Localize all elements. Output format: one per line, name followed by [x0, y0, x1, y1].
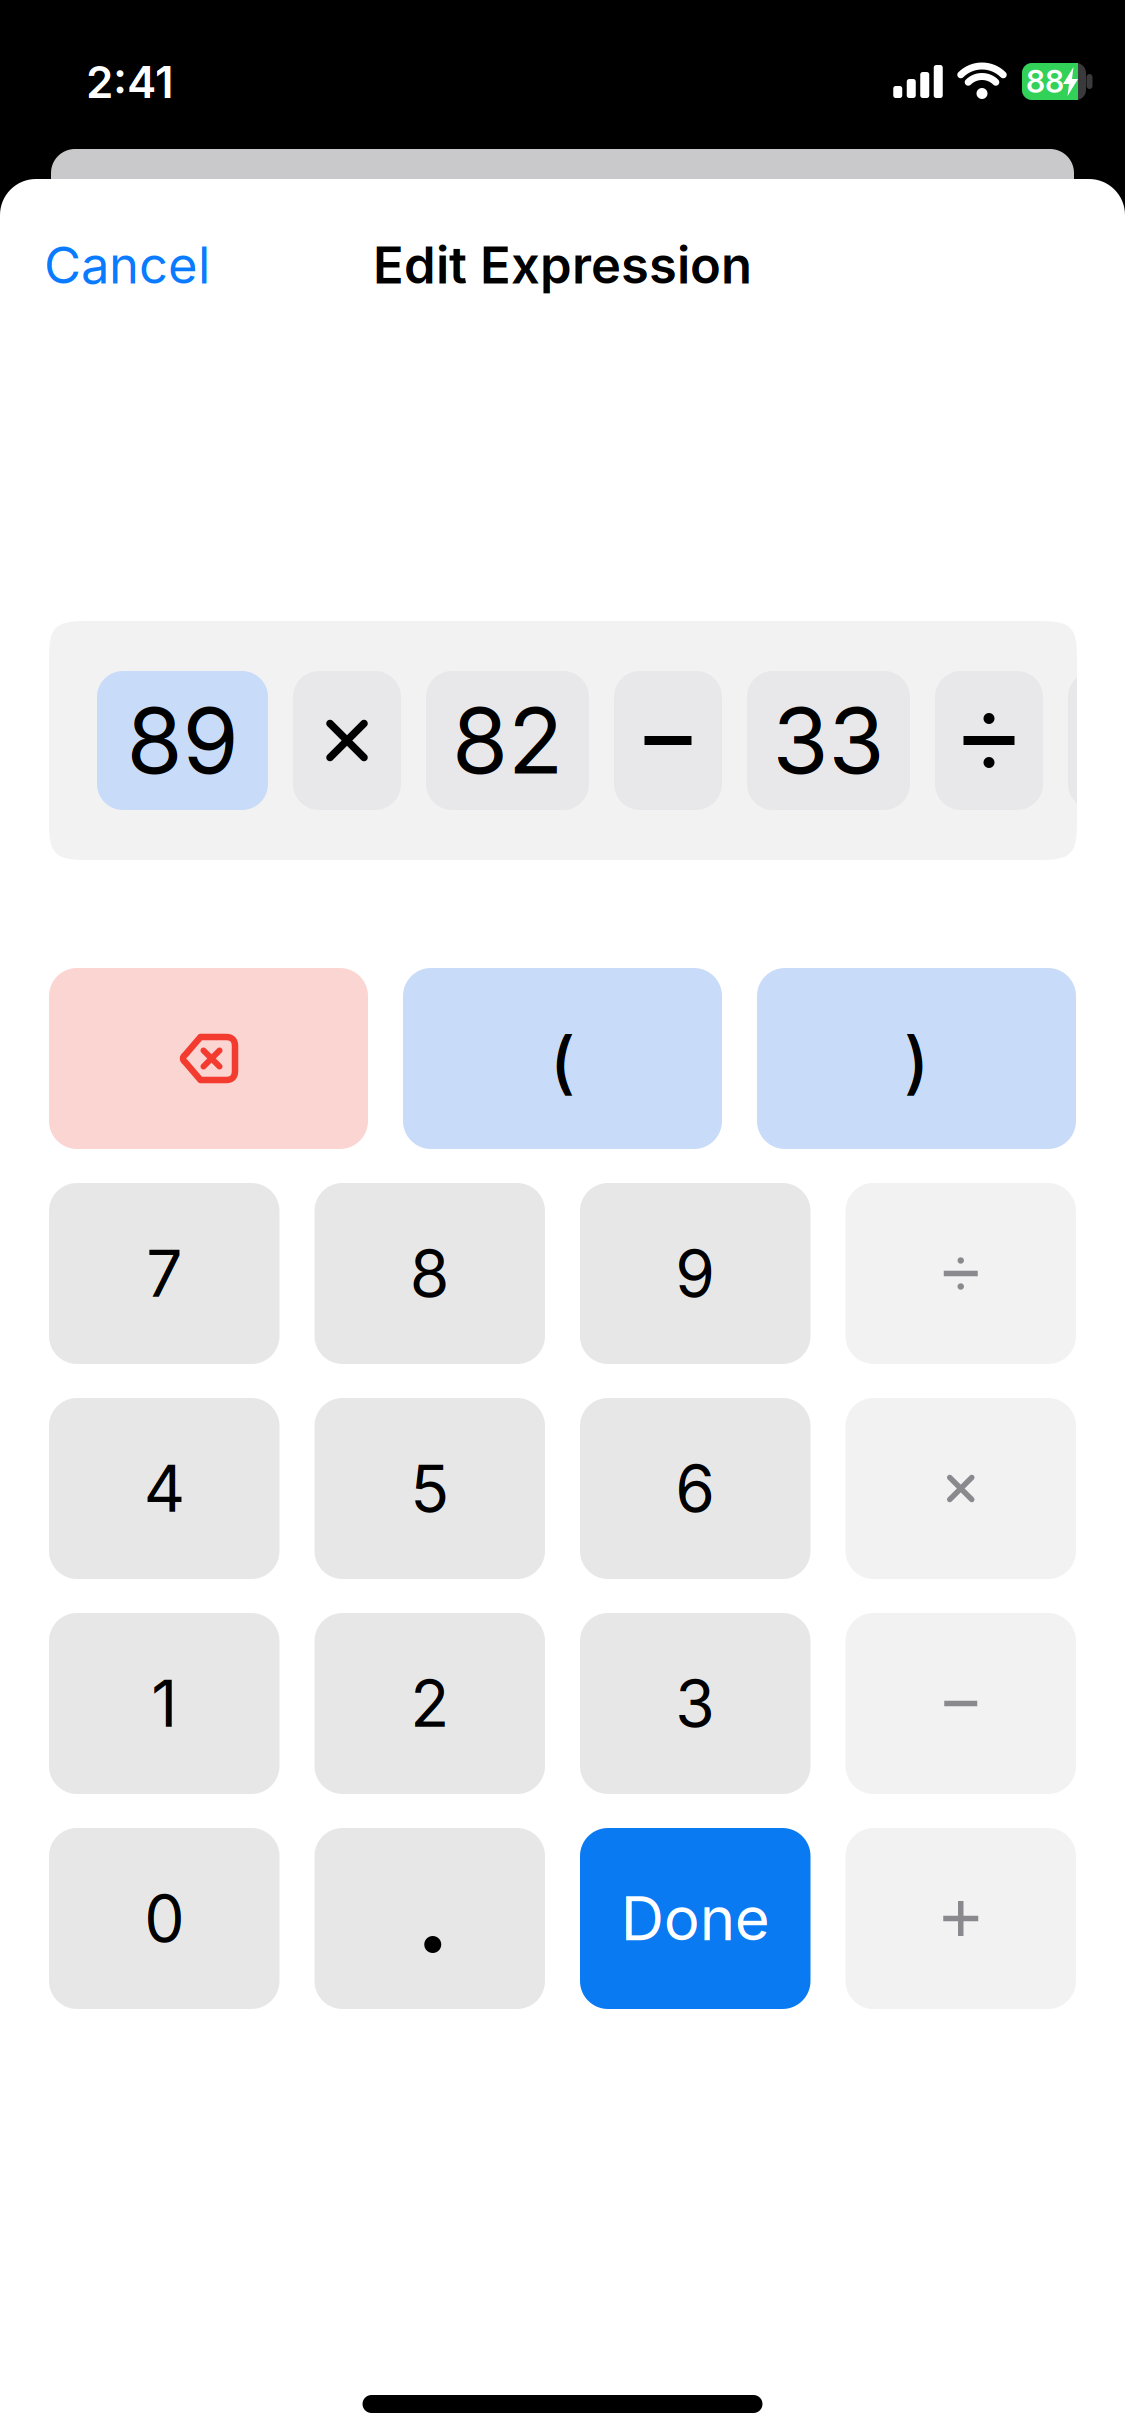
staticText: Cancel [44, 235, 210, 295]
staticText: ) [904, 1022, 929, 1102]
button[interactable]: Subtract [845, 1613, 1076, 1794]
staticText: 89 [126, 687, 238, 794]
button[interactable]: 7 [49, 1183, 279, 1364]
button[interactable]: 0 [49, 1828, 279, 2009]
button[interactable]: 3 [580, 1613, 810, 1794]
button[interactable]: 5 [314, 1398, 545, 1579]
staticText: 6 [675, 1451, 715, 1526]
staticText: 8 [410, 1236, 450, 1311]
button[interactable]: 4 [49, 1398, 279, 1579]
staticText: 0 [144, 1881, 184, 1956]
staticText: ( [550, 1022, 575, 1102]
staticText: Edit Expression [373, 235, 752, 295]
button[interactable]: 6 [580, 1398, 810, 1579]
staticText: Done [621, 1883, 770, 1954]
button[interactable]: Add [845, 1828, 1076, 2009]
button[interactable]: Cancel [44, 235, 210, 295]
button[interactable]: Delete [49, 968, 368, 1149]
staticText: 5 [410, 1451, 449, 1526]
button[interactable]: ) [757, 968, 1076, 1149]
staticText: 88 [1026, 63, 1064, 100]
staticText: 9 [675, 1236, 715, 1311]
button[interactable]: 9 [580, 1183, 810, 1364]
button[interactable]: ( [403, 968, 722, 1149]
staticText: 1 [151, 1666, 177, 1741]
button[interactable]: Done [580, 1828, 810, 2009]
staticText: 82 [452, 687, 563, 794]
staticText: 4 [144, 1451, 185, 1526]
button[interactable]: Divide [845, 1183, 1076, 1364]
staticText: 2 [410, 1666, 449, 1741]
staticText: 33 [772, 687, 884, 794]
button[interactable]: 2 [314, 1613, 545, 1794]
button[interactable]: 8 [314, 1183, 545, 1364]
staticText: 2:41 [86, 56, 174, 108]
button[interactable]: 1 [49, 1613, 279, 1794]
staticText: 7 [146, 1236, 182, 1311]
button[interactable]: Decimal point [314, 1828, 545, 2009]
button[interactable]: Multiply [845, 1398, 1076, 1579]
staticText: 3 [675, 1666, 715, 1741]
